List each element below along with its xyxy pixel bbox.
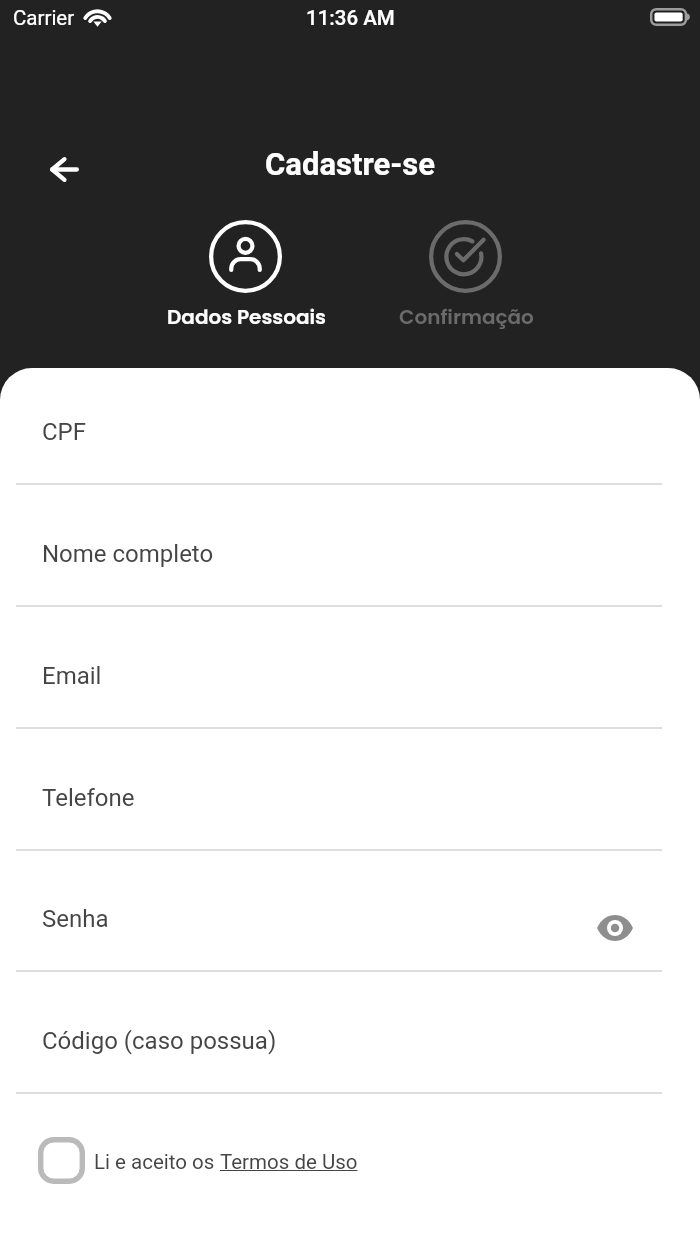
button[interactable]: Senha: [0, 850, 700, 972]
button[interactable]: Back: [34, 139, 94, 199]
staticText: CPF: [42, 418, 87, 446]
button[interactable]: Li e aceito os: [0, 1136, 700, 1184]
staticText: Carrier: [13, 6, 75, 30]
staticText: Código (caso possua): [42, 1027, 277, 1055]
staticText: 11:36 AM: [306, 6, 395, 30]
staticText: Nome completo: [42, 540, 214, 568]
staticText: Li e aceito os: [94, 1150, 220, 1174]
button[interactable]: Show password: [591, 904, 639, 952]
staticText: Telefone: [42, 784, 135, 812]
button[interactable]: Termos de Uso: [220, 1150, 358, 1174]
staticText: Email: [42, 662, 102, 690]
button[interactable]: Nome completo: [0, 485, 700, 607]
button[interactable]: Telefone: [0, 729, 700, 851]
staticText: Senha: [42, 905, 109, 933]
staticText: Confirmação: [399, 303, 534, 331]
button[interactable]: CPF: [0, 368, 700, 485]
button[interactable]: Email: [0, 607, 700, 729]
staticText: Dados Pessoais: [167, 303, 326, 331]
staticText: Cadastre-se: [265, 146, 435, 182]
button[interactable]: Confirmação: [355, 206, 575, 336]
button[interactable]: Código (caso possua): [0, 972, 700, 1094]
button[interactable]: Dados Pessoais: [135, 206, 355, 336]
